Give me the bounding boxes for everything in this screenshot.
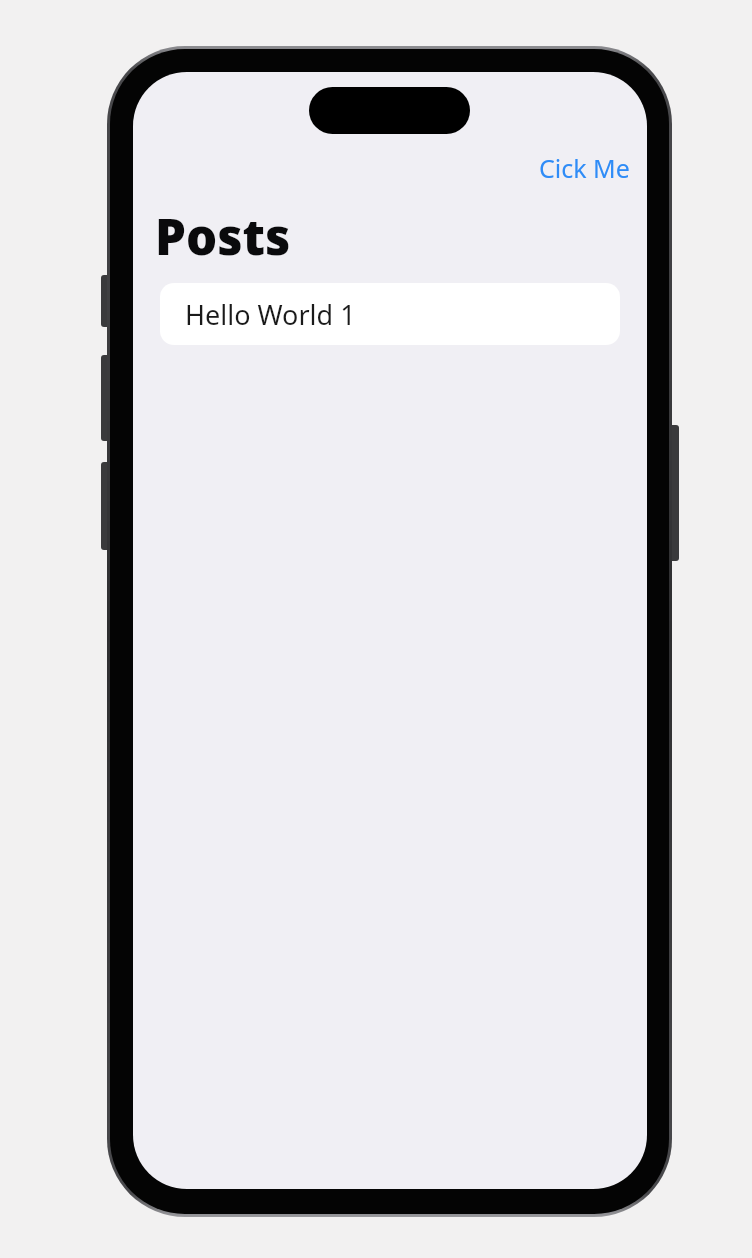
staticText: Posts (155, 203, 291, 270)
other: Dynamic Island (309, 87, 470, 134)
button[interactable]: Cick Me (533, 146, 636, 190)
staticText: Hello World 1 (185, 296, 356, 333)
button[interactable]: Hello World 1 (160, 283, 620, 345)
staticText: Cick Me (539, 151, 630, 185)
